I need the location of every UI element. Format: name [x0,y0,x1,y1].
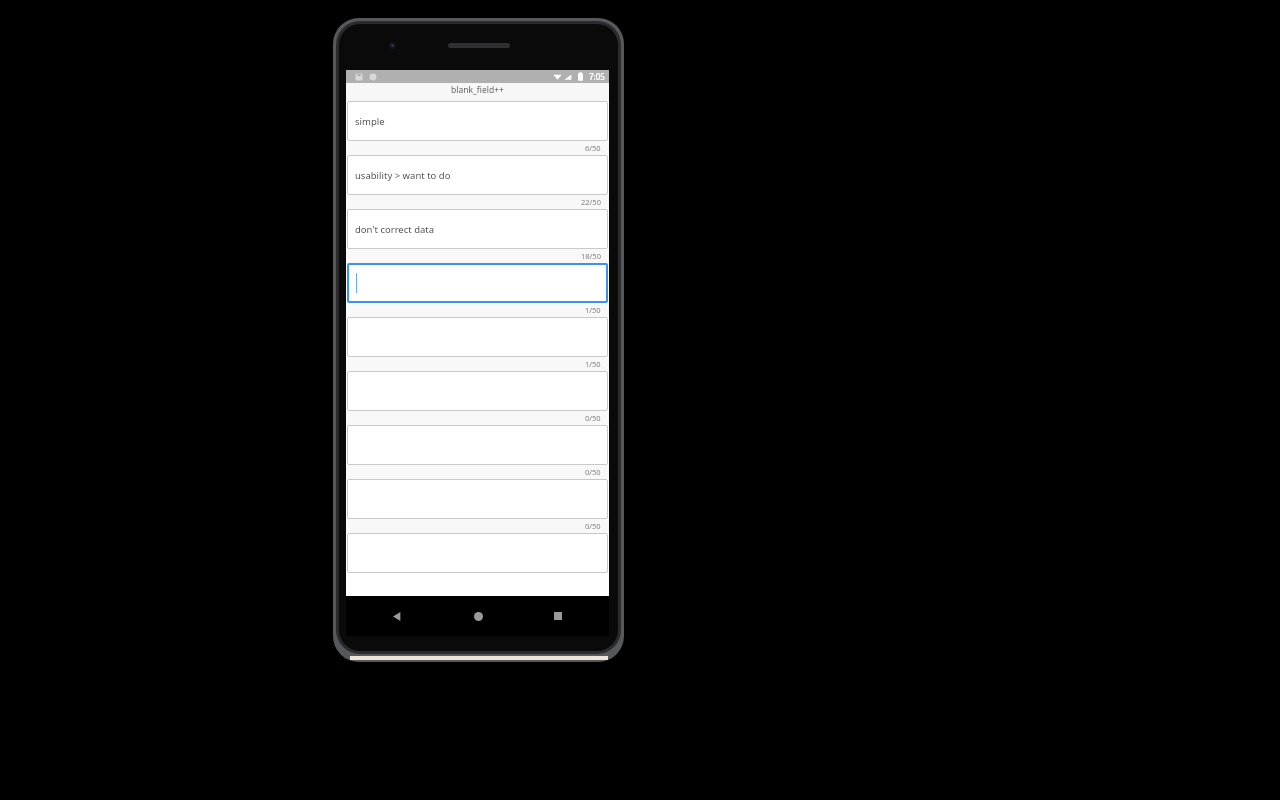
staticText: usability > want to do [355,169,451,182]
staticText: don't correct data [355,223,435,236]
staticText: 22/50 [581,197,601,207]
button[interactable]: Recent apps [528,596,588,636]
button[interactable]: simple [347,101,608,141]
button[interactable]: Back [367,596,427,636]
button[interactable] [347,263,608,303]
staticText: 6/50 [585,143,601,153]
button[interactable]: Home [448,596,508,636]
button[interactable] [347,371,608,411]
staticText: 0/50 [585,521,601,531]
staticText: simple [355,115,385,128]
staticText: 0/50 [585,413,601,423]
staticText: 7:05 [589,71,605,82]
staticText: 18/50 [581,251,601,261]
button[interactable]: usability > want to do [347,155,608,195]
staticText: 0/50 [585,467,601,477]
button[interactable] [347,317,608,357]
button[interactable] [347,479,608,519]
button[interactable]: don't correct data [347,209,608,249]
staticText: 1/50 [585,305,601,315]
staticText: blank_field++ [451,84,504,96]
button[interactable] [347,533,608,573]
button[interactable] [347,425,608,465]
staticText: 1/50 [585,359,601,369]
